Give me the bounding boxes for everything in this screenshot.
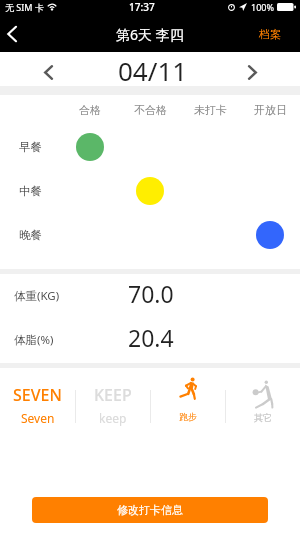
staticText: 体重(KG): [14, 288, 60, 304]
button[interactable]: 跑步: [151, 368, 225, 430]
staticText: Seven: [21, 410, 55, 426]
staticText: SEVEN: [13, 384, 62, 406]
staticText: 04/11: [118, 53, 188, 86]
button[interactable]: 晚餐: [0, 213, 300, 257]
button[interactable]: 中餐: [0, 169, 300, 213]
button[interactable]: 体重(KG): [0, 274, 300, 318]
staticText: keep: [99, 410, 127, 426]
button[interactable]: KEEP: [76, 368, 150, 430]
staticText: 合格: [79, 103, 101, 117]
button[interactable]: 修改打卡信息: [32, 497, 268, 523]
button[interactable]: 体脂(%): [0, 318, 300, 362]
staticText: 不合格: [134, 103, 167, 117]
button[interactable]: 其它: [226, 368, 300, 430]
staticText: 70.0: [128, 278, 174, 309]
staticText: 无 SIM 卡: [5, 1, 44, 13]
staticText: 开放日: [254, 103, 287, 117]
staticText: 20.4: [128, 322, 174, 353]
button[interactable]: 早餐: [0, 125, 300, 169]
staticText: 中餐: [19, 184, 42, 198]
staticText: 17:37: [129, 0, 155, 14]
staticText: 未打卡: [194, 103, 227, 117]
button[interactable]: 档案: [259, 16, 281, 52]
staticText: 第6天 李四: [116, 25, 184, 44]
button[interactable]: SEVEN: [0, 368, 75, 430]
staticText: 其它: [254, 412, 272, 423]
staticText: 跑步: [179, 411, 197, 422]
staticText: KEEP: [94, 384, 132, 406]
staticText: 修改打卡信息: [117, 503, 183, 517]
staticText: 早餐: [19, 140, 42, 154]
staticText: 晚餐: [19, 228, 42, 242]
button[interactable]: Previous day: [0, 52, 70, 86]
staticText: 体脂(%): [14, 332, 54, 348]
staticText: 档案: [259, 27, 281, 41]
button[interactable]: Next day: [230, 52, 300, 86]
staticText: 100%: [251, 1, 274, 13]
button[interactable]: Back: [0, 16, 26, 52]
